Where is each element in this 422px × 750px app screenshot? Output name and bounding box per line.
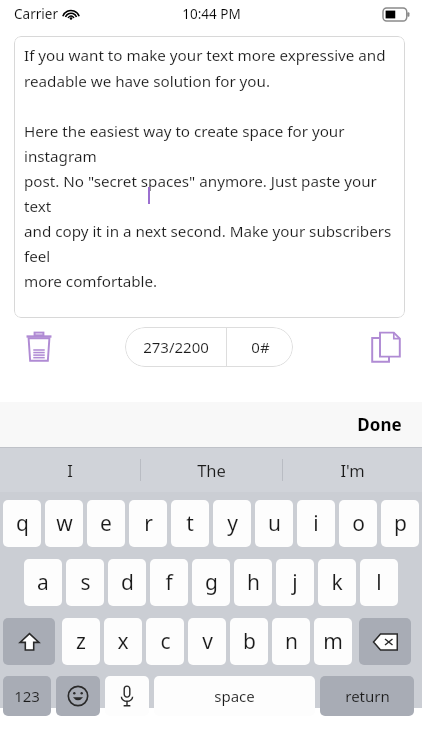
staticText: 0# [251,337,270,357]
button[interactable]: p [381,500,419,547]
staticText: x [117,627,129,656]
button[interactable]: Done [357,413,402,436]
staticText: I [67,459,73,481]
button[interactable]: Clear text [18,326,60,368]
button[interactable]: The [141,448,282,492]
button[interactable]: a [24,559,62,606]
staticText: Carrier [14,5,58,23]
staticText: space [214,686,255,706]
staticText: If you want to make your text more expre… [24,45,397,291]
button[interactable]: b [230,618,268,665]
staticText: e [100,509,112,538]
staticText: j [292,568,298,597]
button[interactable]: f [150,559,188,606]
staticText: u [268,509,281,538]
staticText: 123 [14,686,40,706]
staticText: i [313,509,319,538]
button[interactable]: 123 [3,676,51,716]
button[interactable]: g [192,559,230,606]
button[interactable]: r [129,500,167,547]
button[interactable]: x [104,618,142,665]
staticText: p [394,509,407,538]
staticText: n [285,627,298,656]
staticText: y [227,509,238,538]
button[interactable]: q [3,500,41,547]
button[interactable]: l [360,559,398,606]
staticText: g [205,568,218,597]
button[interactable]: return [320,676,414,716]
button[interactable]: h [234,559,272,606]
staticText: b [243,627,256,656]
button[interactable]: e [87,500,125,547]
button[interactable]: space [154,676,315,716]
button[interactable]: c [146,618,184,665]
staticText: q [16,509,29,538]
button[interactable]: i [297,500,335,547]
button[interactable]: t [171,500,209,547]
button[interactable]: o [339,500,377,547]
staticText: The [197,459,226,481]
button[interactable]: Backspace [359,618,411,665]
staticText: c [160,627,171,656]
staticText: l [376,568,382,597]
staticText: return [345,686,390,706]
button[interactable]: d [108,559,146,606]
button[interactable]: Shift [3,618,55,665]
staticText: k [331,568,343,597]
staticText: Done [357,413,402,436]
button[interactable]: z [62,618,100,665]
button[interactable]: j [276,559,314,606]
staticText: 273/2200 [143,337,209,357]
button[interactable]: Dictate [105,676,149,716]
staticText: z [76,627,86,656]
button[interactable]: I [0,448,140,492]
staticText: m [323,627,343,656]
staticText: s [80,568,91,597]
staticText: w [56,509,73,538]
button[interactable]: w [45,500,83,547]
button[interactable]: m [314,618,352,665]
button[interactable]: 273/2200 [125,327,293,367]
button[interactable]: y [213,500,251,547]
staticText: r [144,509,153,538]
staticText: d [121,568,134,597]
staticText: o [352,509,365,538]
button[interactable]: v [188,618,226,665]
staticText: a [37,568,49,597]
button[interactable]: k [318,559,356,606]
button[interactable]: Emoji [56,676,100,716]
button[interactable]: u [255,500,293,547]
staticText: f [165,568,173,597]
button[interactable]: n [272,618,310,665]
button[interactable]: s [66,559,104,606]
button[interactable]: Copy text [364,325,408,369]
staticText: h [247,568,260,597]
staticText: t [186,509,194,538]
staticText: v [202,627,213,656]
button[interactable]: If you want to make your text more expre… [14,36,405,318]
button[interactable]: I'm [283,448,422,492]
staticText: I'm [340,459,365,481]
staticText: 10:44 PM [182,5,241,23]
